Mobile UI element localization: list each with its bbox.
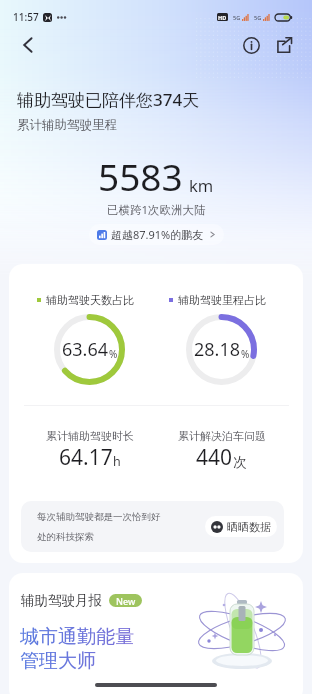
- staticText: 超越87.91%的鹏友: [111, 227, 204, 242]
- staticText: 晒晒数据: [227, 520, 271, 534]
- staticText: 辅助驾驶里程占比: [178, 293, 266, 307]
- staticText: 累计辅助驾驶里程: [17, 117, 117, 133]
- staticText: 5583: [98, 151, 183, 201]
- staticText: 辅助驾驶已陪伴您374天: [17, 88, 200, 111]
- button[interactable]: 超越87.91%的鹏友: [89, 224, 224, 245]
- staticText: 5G: [254, 14, 262, 21]
- button[interactable]: 晒晒数据: [205, 516, 277, 537]
- staticText: km: [189, 174, 214, 196]
- staticText: HD: [218, 14, 227, 21]
- staticText: 28.18: [194, 337, 241, 362]
- staticText: 5G: [233, 14, 241, 21]
- staticText: 63.64: [62, 337, 109, 362]
- button[interactable]: Info: [237, 31, 265, 59]
- staticText: %: [241, 347, 250, 361]
- staticText: 440: [196, 443, 233, 472]
- button[interactable]: 辅助驾驶月报: [9, 573, 303, 694]
- staticText: 已横跨1次欧洲大陆: [107, 202, 206, 218]
- staticText: 累计辅助驾驶时长: [46, 429, 134, 443]
- staticText: 次: [233, 454, 247, 471]
- staticText: 辅助驾驶天数占比: [46, 293, 134, 307]
- staticText: 辅助驾驶月报: [21, 592, 102, 609]
- button[interactable]: Share: [270, 31, 298, 59]
- staticText: %: [109, 347, 118, 361]
- staticText: 11:57: [13, 10, 39, 24]
- staticText: 64.17: [59, 443, 113, 472]
- staticText: New: [116, 595, 136, 607]
- staticText: 城市通勤能量 管理大师: [20, 625, 134, 673]
- staticText: h: [113, 453, 121, 470]
- staticText: 每次辅助驾驶都是一次恰到好 处的科技探索: [37, 511, 161, 543]
- button[interactable]: Back: [13, 29, 45, 61]
- staticText: 累计解决泊车问题: [178, 429, 266, 443]
